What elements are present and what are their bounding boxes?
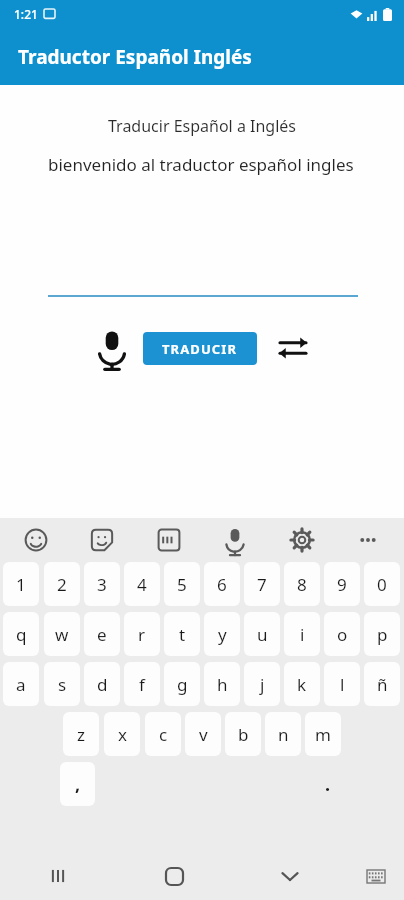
button[interactable]: g: [164, 662, 200, 706]
staticText: 1: [16, 573, 26, 596]
button[interactable]: e: [84, 612, 120, 656]
button[interactable]: 0: [364, 562, 400, 606]
staticText: b: [238, 723, 249, 746]
staticText: z: [77, 723, 85, 746]
staticText: ,: [75, 772, 81, 797]
staticText: 6: [217, 573, 227, 596]
staticText: v: [199, 723, 208, 746]
staticText: o: [337, 623, 348, 646]
button[interactable]: x: [104, 712, 140, 756]
button[interactable]: t: [164, 612, 200, 656]
staticText: 5: [177, 573, 187, 596]
staticText: d: [97, 673, 108, 696]
staticText: k: [297, 673, 307, 696]
staticText: m: [315, 723, 331, 746]
button[interactable]: 7: [244, 562, 280, 606]
staticText: Traducir Español a Inglés: [0, 115, 404, 137]
button[interactable]: m: [305, 712, 341, 756]
staticText: w: [55, 623, 69, 646]
staticText: .: [325, 772, 331, 797]
button[interactable]: u: [244, 612, 280, 656]
button[interactable]: a: [3, 662, 39, 706]
staticText: y: [218, 623, 227, 646]
button[interactable]: 4: [124, 562, 160, 606]
staticText: j: [260, 673, 265, 696]
button[interactable]: Inicio: [116, 852, 232, 900]
button[interactable]: v: [185, 712, 221, 756]
button[interactable]: Ajustes del teclado: [280, 518, 324, 562]
button[interactable]: Intercambiar idiomas: [271, 326, 315, 370]
button[interactable]: Recientes: [0, 852, 116, 900]
button[interactable]: Dictado por voz: [213, 518, 257, 562]
button[interactable]: q: [3, 612, 39, 656]
staticText: l: [340, 673, 345, 696]
button[interactable]: Stickers: [80, 518, 124, 562]
staticText: x: [118, 723, 127, 746]
button[interactable]: z: [63, 712, 99, 756]
button[interactable]: w: [44, 612, 80, 656]
button[interactable]: k: [284, 662, 320, 706]
button[interactable]: f: [124, 662, 160, 706]
button[interactable]: b: [225, 712, 261, 756]
staticText: i: [300, 623, 305, 646]
button[interactable]: n: [265, 712, 301, 756]
staticText: r: [138, 623, 146, 646]
button[interactable]: Ocultar teclado: [232, 852, 348, 900]
button[interactable]: l: [324, 662, 360, 706]
button[interactable]: i: [284, 612, 320, 656]
button[interactable]: Cambiar teclado: [348, 852, 404, 900]
staticText: a: [16, 673, 26, 696]
staticText: f: [139, 673, 145, 696]
staticText: s: [58, 673, 67, 696]
button[interactable]: s: [44, 662, 80, 706]
button[interactable]: Emoji: [14, 518, 58, 562]
staticText: h: [217, 673, 228, 696]
button[interactable]: 5: [164, 562, 200, 606]
button[interactable]: ñ: [364, 662, 400, 706]
button[interactable]: Entrada de voz: [89, 325, 135, 371]
button[interactable]: y: [204, 612, 240, 656]
button[interactable]: p: [364, 612, 400, 656]
button[interactable]: 8: [284, 562, 320, 606]
staticText: n: [278, 723, 289, 746]
staticText: ñ: [377, 673, 388, 696]
staticText: q: [16, 623, 27, 646]
staticText: g: [177, 673, 188, 696]
button[interactable]: d: [84, 662, 120, 706]
button[interactable]: Más opciones: [346, 518, 390, 562]
staticText: 7: [257, 573, 267, 596]
staticText: 3: [97, 573, 107, 596]
staticText: t: [179, 623, 186, 646]
staticText: 0: [377, 573, 387, 596]
button[interactable]: GIF: [147, 518, 191, 562]
button[interactable]: 1: [3, 562, 39, 606]
staticText: 8: [297, 573, 307, 596]
staticText: TRADUCIR: [162, 340, 238, 358]
button[interactable]: 2: [44, 562, 80, 606]
staticText: u: [257, 623, 268, 646]
button[interactable]: 3: [84, 562, 120, 606]
staticText: 9: [337, 573, 347, 596]
button[interactable]: r: [124, 612, 160, 656]
staticText: 1:21: [14, 6, 38, 22]
button[interactable]: 6: [204, 562, 240, 606]
button[interactable]: o: [324, 612, 360, 656]
staticText: e: [97, 623, 107, 646]
button[interactable]: 9: [324, 562, 360, 606]
staticText: 2: [57, 573, 67, 596]
staticText: c: [159, 723, 168, 746]
button[interactable]: c: [145, 712, 181, 756]
staticText: Traductor Español Inglés: [18, 44, 252, 70]
staticText: 4: [137, 573, 147, 596]
button[interactable]: TRADUCIR: [143, 332, 257, 365]
button[interactable]: h: [204, 662, 240, 706]
button[interactable]: coma: [60, 762, 95, 806]
button[interactable]: j: [244, 662, 280, 706]
staticText: p: [377, 623, 388, 646]
button[interactable]: bienvenido al traductor español ingles: [48, 153, 354, 176]
